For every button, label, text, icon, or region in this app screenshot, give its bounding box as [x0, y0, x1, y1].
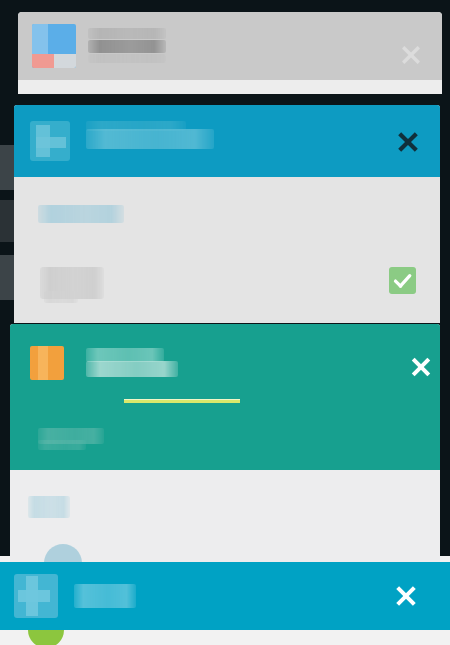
button[interactable]: Close recent task [392, 126, 424, 158]
button[interactable]: Close recent task [396, 40, 426, 70]
button[interactable]: Close recent task [18, 12, 442, 94]
button[interactable]: Compose [28, 612, 64, 645]
button[interactable]: Close recent task [14, 105, 440, 323]
button[interactable]: Close recent task [10, 324, 440, 562]
button[interactable]: Checked [389, 267, 416, 294]
button[interactable]: Close recent task [390, 580, 422, 612]
button[interactable]: Close recent task [0, 562, 450, 630]
button[interactable]: Close recent task [406, 352, 436, 382]
